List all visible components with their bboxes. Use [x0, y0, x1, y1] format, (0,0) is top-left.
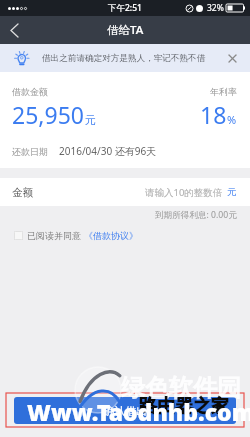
staticText: 32% [207, 2, 224, 14]
button[interactable]: Back [0, 16, 28, 44]
staticText: 下午2:51 [108, 2, 142, 14]
staticText: 请输入10的整数倍 [145, 186, 223, 199]
staticText: Www.Taodnhb.com [27, 396, 250, 427]
staticText: 路由器之家 [139, 395, 229, 418]
button[interactable]: 已阅读并同意 [14, 230, 250, 241]
staticText: 25,950 [12, 99, 84, 130]
button[interactable]: 《借款协议》 [84, 230, 138, 241]
staticText: 18 [200, 99, 227, 130]
staticText: 确认借出 [103, 404, 147, 418]
staticText: 到期所得利息: 0.00元 [155, 209, 237, 221]
staticText: 元 [227, 186, 237, 198]
staticText: 借给TA [107, 22, 144, 38]
button[interactable]: 金额 [0, 178, 250, 206]
staticText: % [227, 112, 237, 127]
staticText: 绿色软件园 [121, 373, 241, 403]
staticText: 已阅读并同意 [27, 230, 81, 241]
staticText: 2016/04/30 还有96天 [59, 144, 157, 158]
button[interactable]: 确认借出 [14, 397, 236, 424]
staticText: 还款日期 [12, 146, 48, 157]
staticText: 金额 [12, 186, 33, 199]
staticText: 元 [85, 113, 96, 127]
button[interactable]: Close [224, 50, 240, 66]
staticText: 借款金额 [12, 86, 48, 97]
staticText: 年利率 [210, 86, 237, 97]
staticText: 借出之前请确定对方是熟人，牢记不熟不借 [42, 53, 206, 64]
